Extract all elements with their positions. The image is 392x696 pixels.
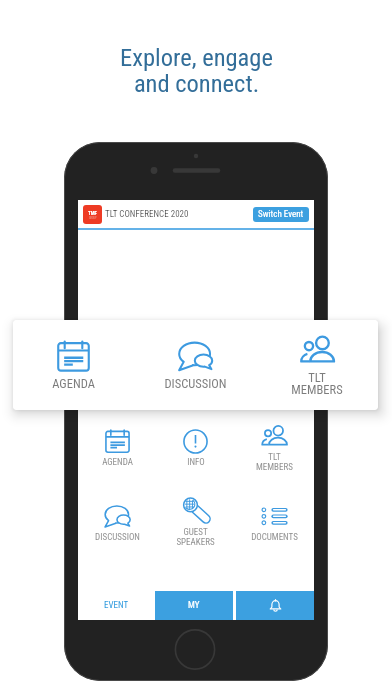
button[interactable]: Notifications <box>236 591 314 620</box>
staticText: TLT MEMBERS <box>256 452 293 472</box>
button[interactable]: MY <box>155 591 233 620</box>
staticText: Explore, engage and connect. <box>120 43 273 98</box>
button[interactable]: TLT MEMBERS <box>256 320 378 410</box>
staticText: TMF <box>88 210 97 216</box>
staticText: TLT CONFERENCE 2020 <box>105 209 189 220</box>
staticText: EVENT <box>104 600 129 611</box>
staticText: TLT MEMBERS <box>291 370 343 397</box>
staticText: AGENDA <box>102 457 133 468</box>
button[interactable]: AGENDA <box>78 429 156 479</box>
staticText: DISCUSSION <box>164 376 227 391</box>
staticText: DOCUMENTS <box>251 532 298 543</box>
button[interactable]: DISCUSSION <box>78 504 156 554</box>
staticText: INFO <box>187 457 205 468</box>
staticText: Switch Event <box>258 209 304 220</box>
staticText: DISCUSSION <box>95 532 140 543</box>
button[interactable]: TLT MEMBERS <box>235 429 314 479</box>
staticText: MY <box>188 600 200 611</box>
staticText: GUEST SPEAKERS <box>176 527 215 547</box>
staticText: AGENDA <box>52 376 95 391</box>
button[interactable]: GUEST SPEAKERS <box>156 504 235 554</box>
button[interactable]: AGENDA <box>13 320 134 410</box>
button[interactable]: Switch Event <box>253 207 309 222</box>
staticText: GROUP <box>89 217 97 220</box>
button[interactable]: DOCUMENTS <box>235 504 314 554</box>
button[interactable]: EVENT <box>78 591 155 620</box>
button[interactable]: INFO <box>156 429 235 479</box>
button[interactable]: DISCUSSION <box>134 320 256 410</box>
